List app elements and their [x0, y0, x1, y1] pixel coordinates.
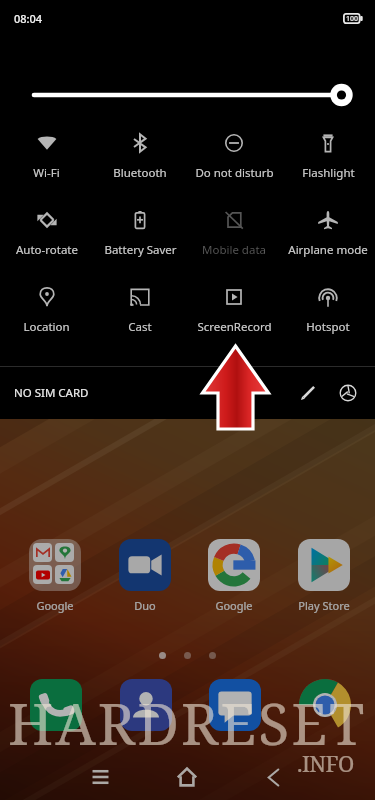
button[interactable]: Home [165, 755, 209, 799]
staticText: Mobile data [202, 242, 266, 258]
button[interactable]: Flashlight [281, 124, 375, 201]
button[interactable]: ScreenRecord [187, 278, 281, 355]
staticText: Duo [134, 598, 156, 613]
button[interactable]: Airplane mode [281, 201, 375, 278]
staticText: Auto-rotate [16, 242, 78, 258]
staticText: 100 [346, 14, 359, 24]
button[interactable] [288, 679, 362, 731]
button[interactable] [198, 679, 272, 731]
staticText: Location [23, 319, 70, 335]
button[interactable]: Location [0, 278, 93, 355]
button[interactable]: Google [197, 539, 271, 613]
button[interactable]: Duo [108, 539, 182, 613]
button[interactable]: Bluetooth [93, 124, 187, 201]
button[interactable]: Play Store [287, 539, 361, 613]
staticText: Flashlight [302, 165, 355, 181]
staticText: Do not disturb [195, 165, 274, 181]
button[interactable] [19, 679, 93, 731]
button[interactable]: Mobile data [187, 201, 281, 278]
staticText: Wi-Fi [33, 165, 60, 181]
staticText: ScreenRecord [197, 319, 272, 335]
staticText: NO SIM CARD [14, 385, 89, 401]
staticText: 08:04 [14, 11, 43, 26]
staticText: Airplane mode [288, 242, 368, 258]
staticText: Google [215, 598, 253, 613]
staticText: Hotspot [306, 319, 350, 335]
button[interactable]: Battery Saver [93, 201, 187, 278]
staticText: .INFO [297, 748, 354, 778]
button[interactable]: Back [251, 755, 295, 799]
staticText: HARDRESET [8, 684, 367, 762]
button[interactable]: Auto-rotate [0, 201, 93, 278]
button[interactable]: Hotspot [281, 278, 375, 355]
staticText: Battery Saver [104, 242, 177, 258]
button[interactable]: Google [18, 539, 92, 613]
button[interactable]: Settings [331, 376, 365, 410]
staticText: Cast [128, 319, 152, 335]
staticText: Google [36, 598, 74, 613]
button[interactable] [109, 679, 183, 731]
staticText: Bluetooth [113, 165, 167, 181]
button[interactable]: Do not disturb [187, 124, 281, 201]
button[interactable]: Recents [78, 755, 122, 799]
button[interactable]: Edit [291, 376, 325, 410]
button[interactable]: Cast [93, 278, 187, 355]
staticText: Play Store [298, 598, 350, 613]
button[interactable]: Wi-Fi [0, 124, 93, 201]
